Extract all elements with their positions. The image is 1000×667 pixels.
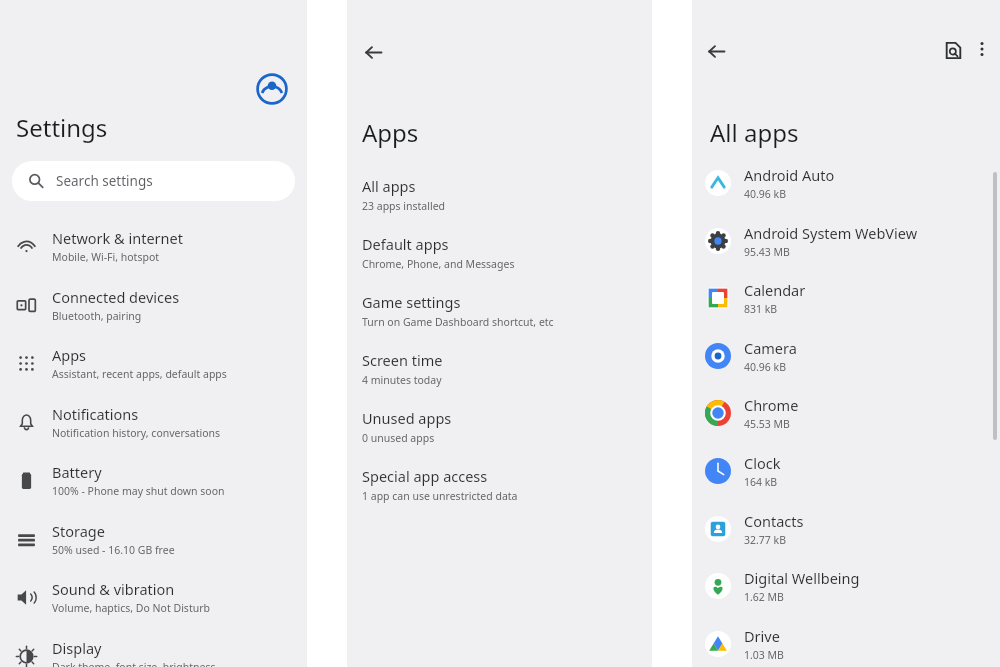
staticText: Storage [52,521,105,541]
staticText: 4 minutes today [362,373,442,387]
staticText: 32.77 kB [744,533,786,547]
button[interactable]: Network & internet [0,220,307,272]
staticText: Clock [744,453,781,473]
staticText: Camera [744,338,797,358]
button[interactable]: Drive [692,618,1000,667]
button[interactable]: Back [697,32,735,70]
staticText: 95.43 MB [744,245,790,259]
button[interactable]: Unused apps [347,402,652,456]
staticText: 45.53 MB [744,417,790,431]
staticText: Network & internet [52,228,183,248]
button[interactable]: Default apps [347,228,652,282]
staticText: 831 kB [744,302,778,316]
button[interactable]: Notifications [0,396,307,448]
staticText: 1.03 MB [744,648,784,662]
staticText: 164 kB [744,475,778,489]
button[interactable]: Digital Wellbeing [692,560,1000,612]
staticText: Search settings [56,172,153,190]
staticText: Digital Wellbeing [744,568,860,588]
button[interactable]: Storage [0,513,307,565]
staticText: 23 apps installed [362,199,446,213]
button[interactable]: Clock [692,445,1000,497]
staticText: All apps [362,176,416,196]
staticText: Special app access [362,466,488,486]
staticText: Volume, haptics, Do Not Disturb [52,601,210,615]
button[interactable]: Search app info [934,31,972,69]
button[interactable]: Connected devices [0,279,307,331]
button[interactable]: Search settings [12,161,295,201]
button[interactable]: Battery [0,454,307,506]
staticText: Connected devices [52,287,180,307]
staticText: Battery [52,462,102,482]
button[interactable]: Android System WebView [692,215,1000,267]
staticText: Display [52,638,102,658]
staticText: Unused apps [362,408,452,428]
staticText: All apps [710,116,799,149]
button[interactable]: Sound & vibration [0,571,307,623]
staticText: Notification history, conversations [52,426,221,440]
staticText: Android System WebView [744,223,918,243]
staticText: 50% used - 16.10 GB free [52,543,175,557]
staticText: Drive [744,626,780,646]
staticText: 40.96 kB [744,360,786,374]
staticText: Chrome [744,395,799,415]
button[interactable]: Calendar [692,272,1000,324]
button[interactable]: More options [964,31,1000,67]
staticText: Screen time [362,350,443,370]
staticText: 100% - Phone may shut down soon [52,484,225,498]
staticText: Android Auto [744,165,835,185]
staticText: Sound & vibration [52,579,175,599]
staticText: 1.62 MB [744,590,784,604]
button[interactable]: Display [0,630,307,667]
staticText: Assistant, recent apps, default apps [52,367,227,381]
button[interactable]: Contacts [692,503,1000,555]
staticText: Dark theme, font size, brightness [52,660,216,667]
staticText: Notifications [52,404,139,424]
staticText: Bluetooth, pairing [52,309,142,323]
staticText: Contacts [744,511,804,531]
button[interactable]: Camera [692,330,1000,382]
staticText: Apps [52,345,87,365]
staticText: Turn on Game Dashboard shortcut, etc [362,315,554,329]
button[interactable]: Game settings [347,286,652,340]
staticText: Mobile, Wi-Fi, hotspot [52,250,160,264]
staticText: Default apps [362,234,449,254]
button[interactable]: Chrome [692,387,1000,439]
staticText: Apps [362,116,419,149]
button[interactable]: Apps [0,337,307,389]
button[interactable]: All apps [347,170,652,224]
staticText: 0 unused apps [362,431,435,445]
staticText: Calendar [744,280,806,300]
staticText: 1 app can use unrestricted data [362,489,518,503]
button[interactable]: Back [353,32,393,72]
button[interactable]: Account [256,73,288,105]
button[interactable]: Special app access [347,460,652,514]
staticText: 40.96 kB [744,187,786,201]
staticText: Chrome, Phone, and Messages [362,257,515,271]
button[interactable]: Android Auto [692,157,1000,209]
staticText: Game settings [362,292,461,312]
button[interactable]: Screen time [347,344,652,398]
staticText: Settings [16,111,108,144]
